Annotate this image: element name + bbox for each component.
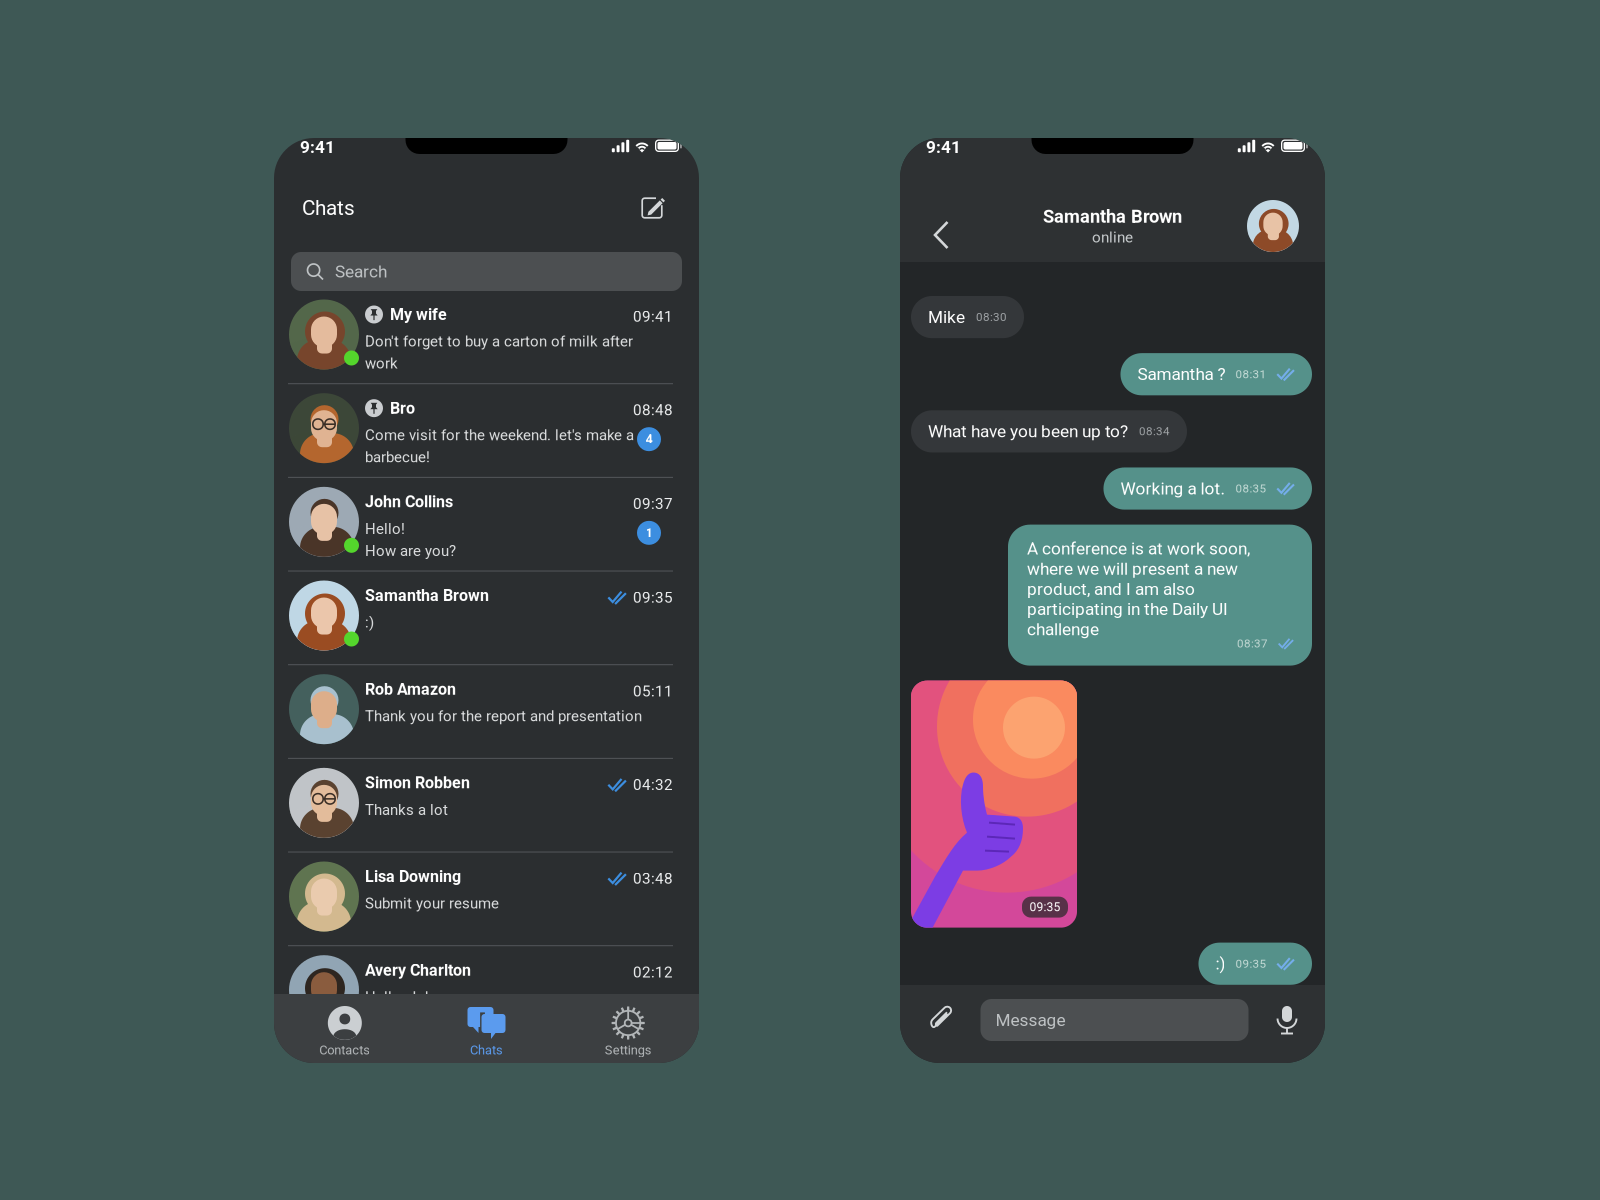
staticText: :) — [365, 614, 374, 631]
staticText: How are you? — [365, 542, 456, 560]
staticText: Lisa Downing — [365, 867, 461, 886]
button[interactable]: Lisa Downing — [288, 852, 673, 945]
staticText: Search — [335, 261, 387, 282]
staticText: 08:37 — [1237, 637, 1268, 650]
staticText: Contacts — [319, 1042, 370, 1057]
button[interactable]: My wife — [288, 290, 673, 383]
staticText: A conference is at work soon, where we w… — [1027, 539, 1250, 639]
button[interactable]: Compose message — [633, 189, 671, 227]
staticText: 08:34 — [1139, 425, 1170, 438]
staticText: Samantha ? — [1137, 364, 1225, 384]
staticText: work — [365, 355, 398, 372]
staticText: Samantha Brown — [1043, 206, 1182, 227]
staticText: Mike — [928, 307, 965, 327]
staticText: Come visit for the weekend. let's make a — [365, 426, 634, 444]
staticText: 02:12 — [633, 963, 673, 981]
staticText: online — [1092, 228, 1133, 246]
staticText: 09:35 — [1029, 900, 1060, 914]
staticText: 4 — [645, 432, 652, 446]
staticText: Rob Amazon — [365, 680, 456, 699]
staticText: 03:48 — [633, 870, 673, 887]
staticText: What have you been up to? — [928, 421, 1128, 441]
button[interactable]: Search — [291, 252, 682, 291]
staticText: 09:37 — [633, 495, 673, 513]
staticText: :) — [1215, 954, 1225, 974]
staticText: 1 — [645, 525, 652, 540]
staticText: Chats — [302, 196, 355, 220]
button[interactable]: Simon Robben — [288, 759, 673, 852]
staticText: Bro — [390, 399, 415, 418]
staticText: Chats — [470, 1042, 503, 1057]
staticText: 9:41 — [926, 137, 961, 157]
button[interactable]: Contacts — [274, 994, 416, 1063]
staticText: Settings — [605, 1042, 652, 1057]
button[interactable]: Bro — [288, 384, 673, 477]
staticText: My wife — [390, 305, 447, 324]
staticText: 09:35 — [1235, 957, 1266, 970]
staticText: 08:30 — [976, 310, 1007, 324]
staticText: 05:11 — [633, 682, 673, 700]
button[interactable]: Samantha Brown — [288, 571, 673, 664]
staticText: Avery Charlton — [365, 961, 471, 980]
staticText: Samantha Brown — [365, 586, 489, 605]
staticText: barbecue! — [365, 448, 430, 466]
button[interactable]: Avery Charlton — [288, 946, 673, 1039]
staticText: 09:35 — [633, 589, 673, 606]
staticText: Hello, John — [365, 988, 441, 1006]
staticText: 09:41 — [633, 308, 673, 325]
staticText: 08:35 — [1235, 482, 1266, 495]
button[interactable]: Record voice message — [1275, 1005, 1299, 1035]
staticText: Message — [995, 1010, 1065, 1030]
button[interactable]: Attach file — [926, 1006, 954, 1034]
staticText: Simon Robben — [365, 773, 470, 792]
button[interactable]: John Collins — [288, 478, 673, 570]
staticText: John Collins — [365, 492, 453, 511]
staticText: Thank you for the report and presentatio… — [365, 707, 642, 725]
staticText: Submit your resume — [365, 895, 499, 912]
staticText: 08:31 — [1235, 367, 1266, 381]
staticText: Thanks a lot — [365, 801, 448, 819]
button[interactable]: Contact profile — [1247, 200, 1299, 252]
button[interactable]: Chats — [416, 994, 557, 1063]
button[interactable]: Rob Amazon — [288, 665, 673, 758]
button[interactable]: Back — [922, 210, 960, 260]
staticText: Don't forget to buy a carton of milk aft… — [365, 333, 633, 350]
staticText: Working a lot. — [1120, 478, 1225, 499]
staticText: Hello! — [365, 520, 405, 538]
staticText: 08:48 — [633, 401, 673, 419]
staticText: 04:32 — [633, 776, 673, 794]
button[interactable]: Settings — [557, 994, 699, 1063]
staticText: 9:41 — [300, 137, 335, 157]
